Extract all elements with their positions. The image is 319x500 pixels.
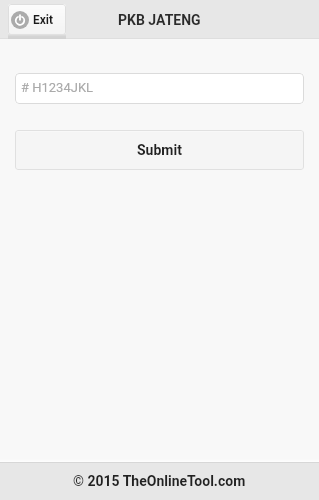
button[interactable]: # H1234JKL	[15, 73, 304, 104]
other: Exit	[11, 11, 29, 29]
staticText: Exit	[33, 13, 54, 27]
staticText: PKB JATENG	[118, 12, 201, 28]
staticText: # H1234JKL	[21, 80, 94, 95]
button[interactable]: Exit	[8, 4, 66, 35]
staticText: Submit	[137, 142, 182, 158]
staticText: © 2015 TheOnlineTool.com	[73, 473, 246, 489]
button[interactable]: Submit	[15, 130, 304, 170]
